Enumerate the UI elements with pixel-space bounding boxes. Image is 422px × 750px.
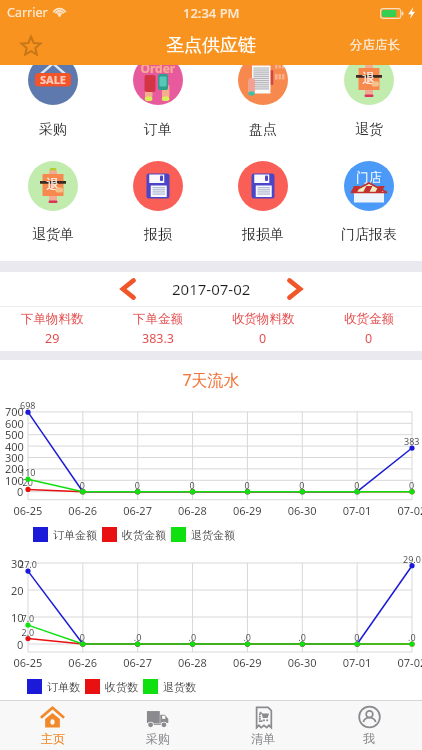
staticText: 2017-07-02	[172, 279, 251, 299]
button[interactable]: 下单物料数	[0, 307, 105, 351]
button[interactable]: 清单	[210, 701, 316, 750]
staticText: 退货	[355, 121, 383, 139]
button[interactable]: 报损	[105, 65, 210, 261]
staticText: 0	[365, 330, 373, 347]
button[interactable]: 盘点	[210, 65, 316, 261]
staticText: 退货单	[32, 226, 74, 244]
staticText: 退货金额	[191, 528, 235, 542]
staticText: 12:34 PM	[183, 4, 240, 22]
staticText: 报损单	[242, 226, 284, 244]
staticText: 门店报表	[341, 226, 397, 244]
button[interactable]: 收货物料数	[210, 307, 316, 351]
button[interactable]: 退货	[316, 65, 422, 261]
button[interactable]: 下单金额	[105, 307, 210, 351]
staticText: 29	[45, 330, 60, 347]
staticText: 收货物料数	[232, 311, 295, 327]
staticText: 下单金额	[133, 311, 183, 327]
staticText: 圣点供应链	[166, 34, 256, 57]
staticText: 7天流水	[0, 369, 422, 391]
staticText: 383.3	[142, 330, 174, 347]
staticText: 我	[363, 731, 375, 746]
staticText: 订单金额	[53, 528, 97, 542]
button[interactable]: 订单	[105, 65, 210, 261]
button[interactable]: Favorite	[16, 31, 45, 60]
button[interactable]: Next day	[278, 272, 312, 306]
button[interactable]: 退货单	[0, 65, 105, 261]
staticText: 0	[259, 330, 267, 347]
staticText: 退货数	[163, 680, 196, 694]
staticText: 收货金额	[344, 311, 394, 327]
staticText: 收货金额	[122, 528, 166, 542]
staticText: 分店店长	[350, 37, 400, 53]
staticText: 下单物料数	[21, 311, 84, 327]
button[interactable]: 收货金额	[316, 307, 422, 351]
staticText: 清单	[251, 731, 275, 746]
button[interactable]: 报损单	[210, 65, 316, 261]
staticText: 采购	[146, 731, 170, 746]
button[interactable]: 主页	[0, 701, 105, 750]
staticText: 盘点	[249, 121, 277, 139]
staticText: 订单数	[47, 680, 80, 694]
staticText: 主页	[41, 731, 65, 746]
staticText: 报损	[144, 226, 172, 244]
button[interactable]: 门店报表	[316, 65, 422, 261]
button[interactable]: 我	[316, 701, 422, 750]
staticText: Carrier	[7, 4, 48, 21]
button[interactable]: 分店店长	[342, 28, 422, 62]
button[interactable]: 采购	[0, 65, 105, 261]
button[interactable]: 采购	[105, 701, 210, 750]
staticText: 订单	[144, 121, 172, 139]
staticText: 收货数	[105, 680, 138, 694]
button[interactable]: Previous day	[111, 272, 145, 306]
staticText: 采购	[39, 121, 67, 139]
